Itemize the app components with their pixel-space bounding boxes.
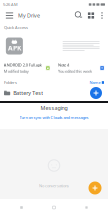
- button[interactable]: APK: [1, 33, 52, 77]
- staticText: My Drive: [18, 12, 40, 19]
- staticText: Note 4: [58, 62, 69, 67]
- staticText: Battery Test: [13, 89, 43, 97]
- staticText: Folders: [4, 80, 17, 85]
- button[interactable]: Battery Test: [0, 88, 108, 98]
- staticText: APK: [8, 43, 21, 52]
- staticText: Name: [90, 80, 101, 85]
- staticText: No conversations: [39, 183, 69, 188]
- button[interactable]: Name: [90, 80, 104, 85]
- staticText: Quick Access: [4, 25, 28, 30]
- staticText: Messaging: [40, 104, 67, 112]
- staticText: ANDROID 2.0 Full.apk: [4, 62, 42, 67]
- button[interactable]: More options: [97, 9, 107, 22]
- staticText: Turn on sync with Clouds and messages: [19, 115, 88, 120]
- staticText: 5:26 AM: [3, 2, 18, 7]
- button[interactable]: Switch to grid view: [85, 9, 97, 22]
- button[interactable]: Turn on sync with Clouds and messages: [0, 113, 108, 122]
- button[interactable]: Start new conversation: [88, 181, 101, 194]
- button[interactable]: Home: [43, 201, 65, 213]
- staticText: Modified today: [4, 68, 29, 74]
- staticText: You edited this week: [58, 68, 92, 74]
- button[interactable]: Back: [10, 201, 32, 213]
- button[interactable]: Search: [73, 9, 85, 22]
- button[interactable]: Create new file: [90, 87, 102, 99]
- button[interactable]: Menu: [1, 9, 18, 22]
- button[interactable]: Note 4: [56, 33, 107, 77]
- button[interactable]: Recent apps: [75, 201, 97, 213]
